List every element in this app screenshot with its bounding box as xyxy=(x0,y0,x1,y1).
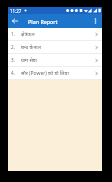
button[interactable]: 1. xyxy=(8,28,102,40)
button[interactable]: Back xyxy=(8,14,22,28)
staticText: ग्राम सेवा xyxy=(21,57,37,64)
staticText: Plan Report xyxy=(28,18,58,25)
button[interactable]: More options xyxy=(88,14,102,28)
staticText: 4. xyxy=(11,70,15,76)
staticText: 3. xyxy=(11,57,15,63)
staticText: सौर (Power) को डो लिया xyxy=(21,70,69,77)
staticText: 11:27 xyxy=(10,8,22,14)
button[interactable]: 3. xyxy=(8,54,102,66)
staticText: बन्ध केनाल xyxy=(21,44,41,51)
button[interactable]: 2. xyxy=(8,41,102,53)
staticText: 1. xyxy=(11,31,15,37)
staticText: 2. xyxy=(11,44,15,50)
button[interactable]: 4. xyxy=(8,67,102,79)
staticText: क्षेत्रफल xyxy=(21,31,35,38)
